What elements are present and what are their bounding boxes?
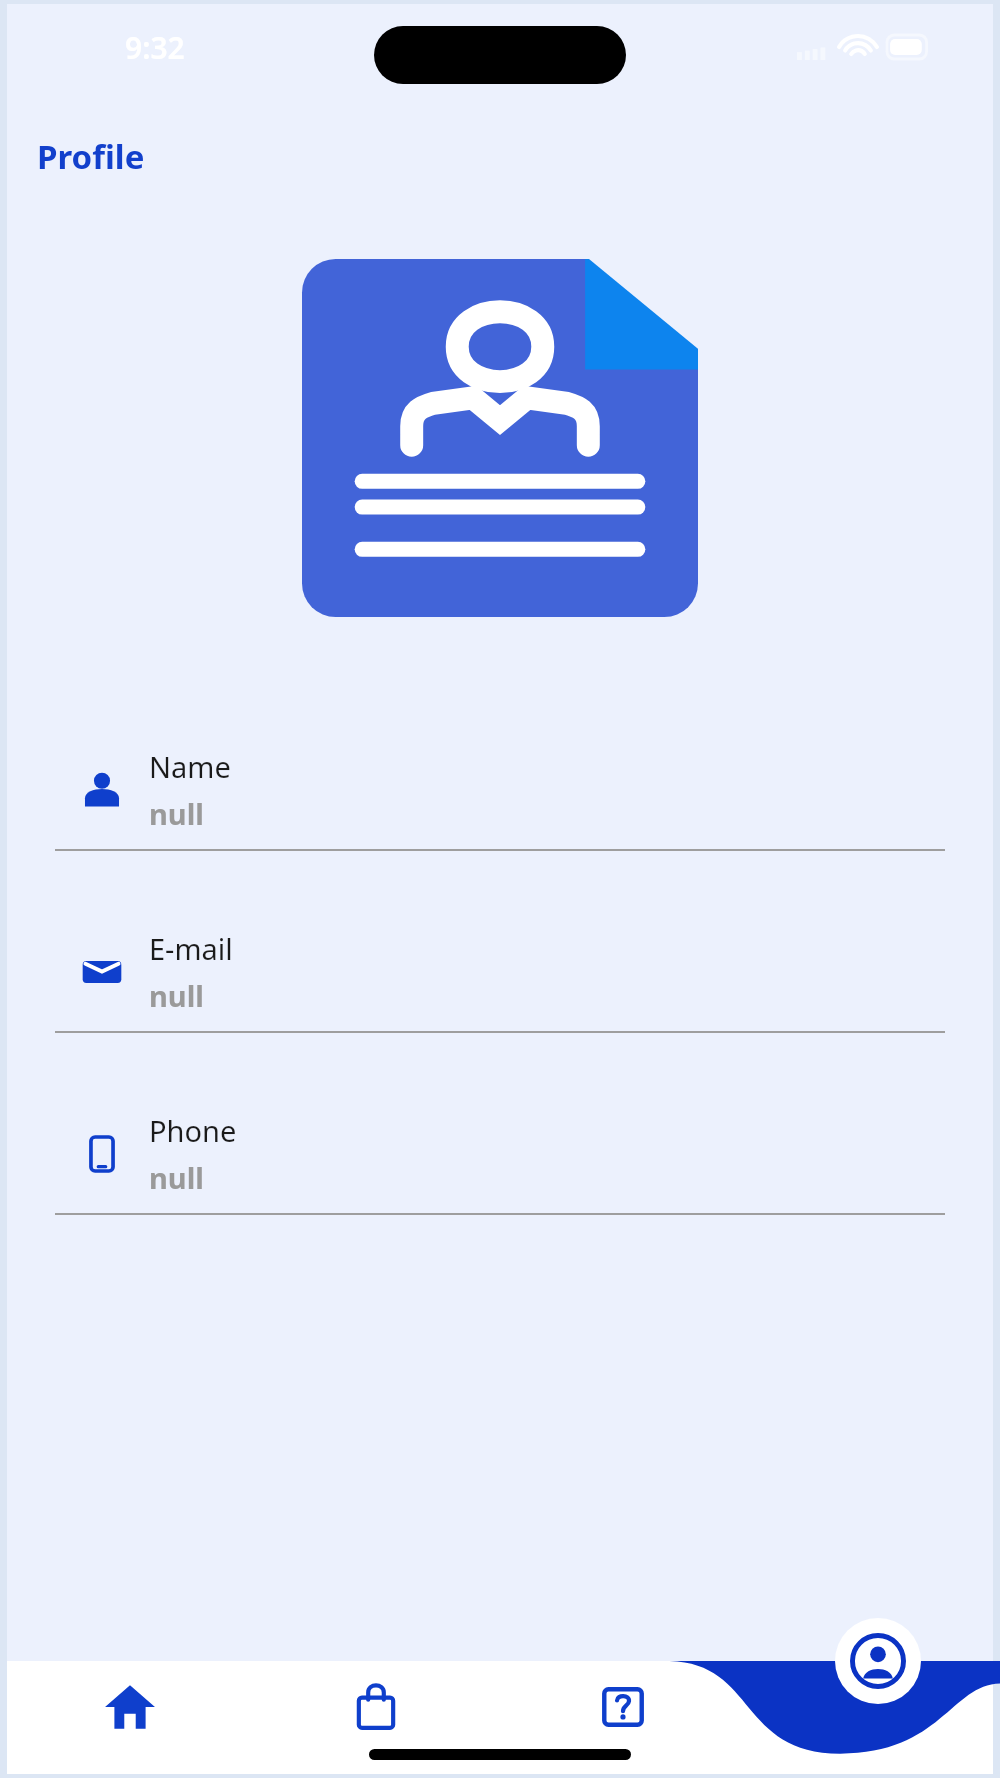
staticText: E-mail bbox=[149, 929, 233, 968]
staticText: 9:32 bbox=[125, 27, 185, 68]
button[interactable]: E-mail bbox=[7, 929, 993, 1033]
staticText: null bbox=[149, 1158, 204, 1197]
staticText: null bbox=[149, 794, 204, 833]
button[interactable]: Help bbox=[499, 1661, 746, 1774]
staticText: Name bbox=[149, 747, 231, 786]
staticText: Profile bbox=[37, 134, 145, 179]
button[interactable]: Phone bbox=[7, 1111, 993, 1215]
button[interactable]: Profile bbox=[835, 1618, 921, 1704]
staticText: Phone bbox=[149, 1111, 237, 1150]
button[interactable]: Shop bbox=[253, 1661, 499, 1774]
button[interactable]: Home bbox=[7, 1661, 253, 1774]
staticText: null bbox=[149, 976, 204, 1015]
other: Profile card bbox=[302, 259, 698, 617]
button[interactable]: Name bbox=[7, 747, 993, 851]
